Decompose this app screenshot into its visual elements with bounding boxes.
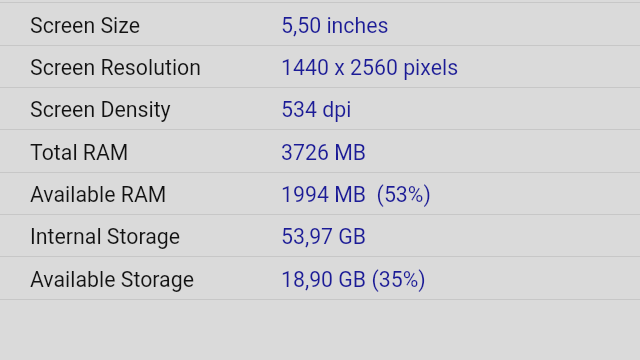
button[interactable]: Available RAM xyxy=(0,173,640,214)
staticText: 1440 x 2560 pixels xyxy=(281,55,459,80)
button[interactable]: Screen Size xyxy=(0,3,640,45)
staticText: 1994 MB (53%) xyxy=(281,182,431,207)
staticText: Internal Storage xyxy=(30,224,181,249)
staticText: 53,97 GB xyxy=(281,224,367,249)
button[interactable]: Screen Resolution xyxy=(0,46,640,87)
staticText: Total RAM xyxy=(30,140,129,165)
button[interactable]: Total RAM xyxy=(0,130,640,172)
button[interactable]: Available Storage xyxy=(0,257,640,299)
staticText: Screen Size xyxy=(30,13,140,38)
staticText: 5,50 inches xyxy=(281,13,389,38)
staticText: Screen Resolution xyxy=(30,55,201,80)
button[interactable]: Internal Storage xyxy=(0,215,640,256)
staticText: Available Storage xyxy=(30,267,194,292)
staticText: 534 dpi xyxy=(281,97,352,122)
staticText: Screen Density xyxy=(30,97,171,122)
button[interactable]: Screen Density xyxy=(0,88,640,129)
staticText: 18,90 GB (35%) xyxy=(281,267,426,292)
staticText: 3726 MB xyxy=(281,140,367,165)
staticText: Available RAM xyxy=(30,182,167,207)
